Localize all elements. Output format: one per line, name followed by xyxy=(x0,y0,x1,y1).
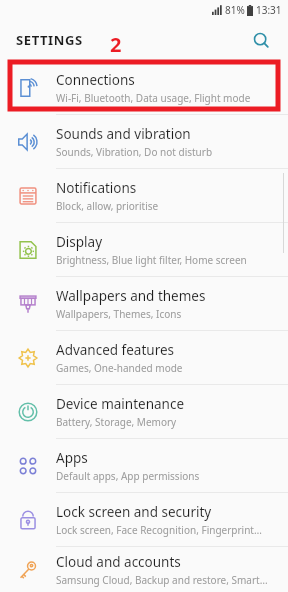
staticText: Lock screen, Face Recognition, Fingerpri… xyxy=(56,523,262,537)
staticText: Wallpapers and themes xyxy=(56,287,206,305)
staticText: Display xyxy=(56,233,103,251)
staticText: Default apps, App permissions xyxy=(56,469,200,483)
staticText: Apps xyxy=(56,449,88,467)
button[interactable]: Lock screen and security xyxy=(0,493,288,546)
button[interactable]: Advanced features xyxy=(0,331,288,384)
staticText: 2 xyxy=(110,31,122,58)
button[interactable]: Search xyxy=(246,25,276,55)
staticText: Samsung Cloud, Backup and restore, Smart… xyxy=(56,573,268,587)
button[interactable]: Connections xyxy=(0,61,288,114)
button[interactable]: Sounds and vibration xyxy=(0,115,288,168)
staticText: Brightness, Blue light filter, Home scre… xyxy=(56,253,247,267)
staticText: SETTINGS xyxy=(16,31,83,49)
staticText: Wallpapers, Themes, Icons xyxy=(56,307,182,321)
staticText: Connections xyxy=(56,71,135,89)
staticText: Cloud and accounts xyxy=(56,553,181,571)
staticText: 13:31 xyxy=(256,3,282,17)
staticText: Advanced features xyxy=(56,341,175,359)
staticText: Device maintenance xyxy=(56,395,185,413)
staticText: 81% xyxy=(225,3,245,17)
staticText: Wi-Fi, Bluetooth, Data usage, Flight mod… xyxy=(56,91,251,105)
button[interactable]: Wallpapers and themes xyxy=(0,277,288,330)
staticText: Notifications xyxy=(56,179,137,197)
staticText: Sounds and vibration xyxy=(56,125,191,143)
button[interactable]: Cloud and accounts xyxy=(0,547,288,592)
button[interactable]: Display xyxy=(0,223,288,276)
button[interactable]: Notifications xyxy=(0,169,288,222)
staticText: Sounds, Vibration, Do not disturb xyxy=(56,145,213,159)
staticText: Games, One-handed mode xyxy=(56,361,183,375)
staticText: Block, allow, prioritise xyxy=(56,199,159,213)
staticText: Lock screen and security xyxy=(56,503,212,521)
button[interactable]: Apps xyxy=(0,439,288,492)
button[interactable]: Device maintenance xyxy=(0,385,288,438)
staticText: Battery, Storage, Memory xyxy=(56,415,177,429)
